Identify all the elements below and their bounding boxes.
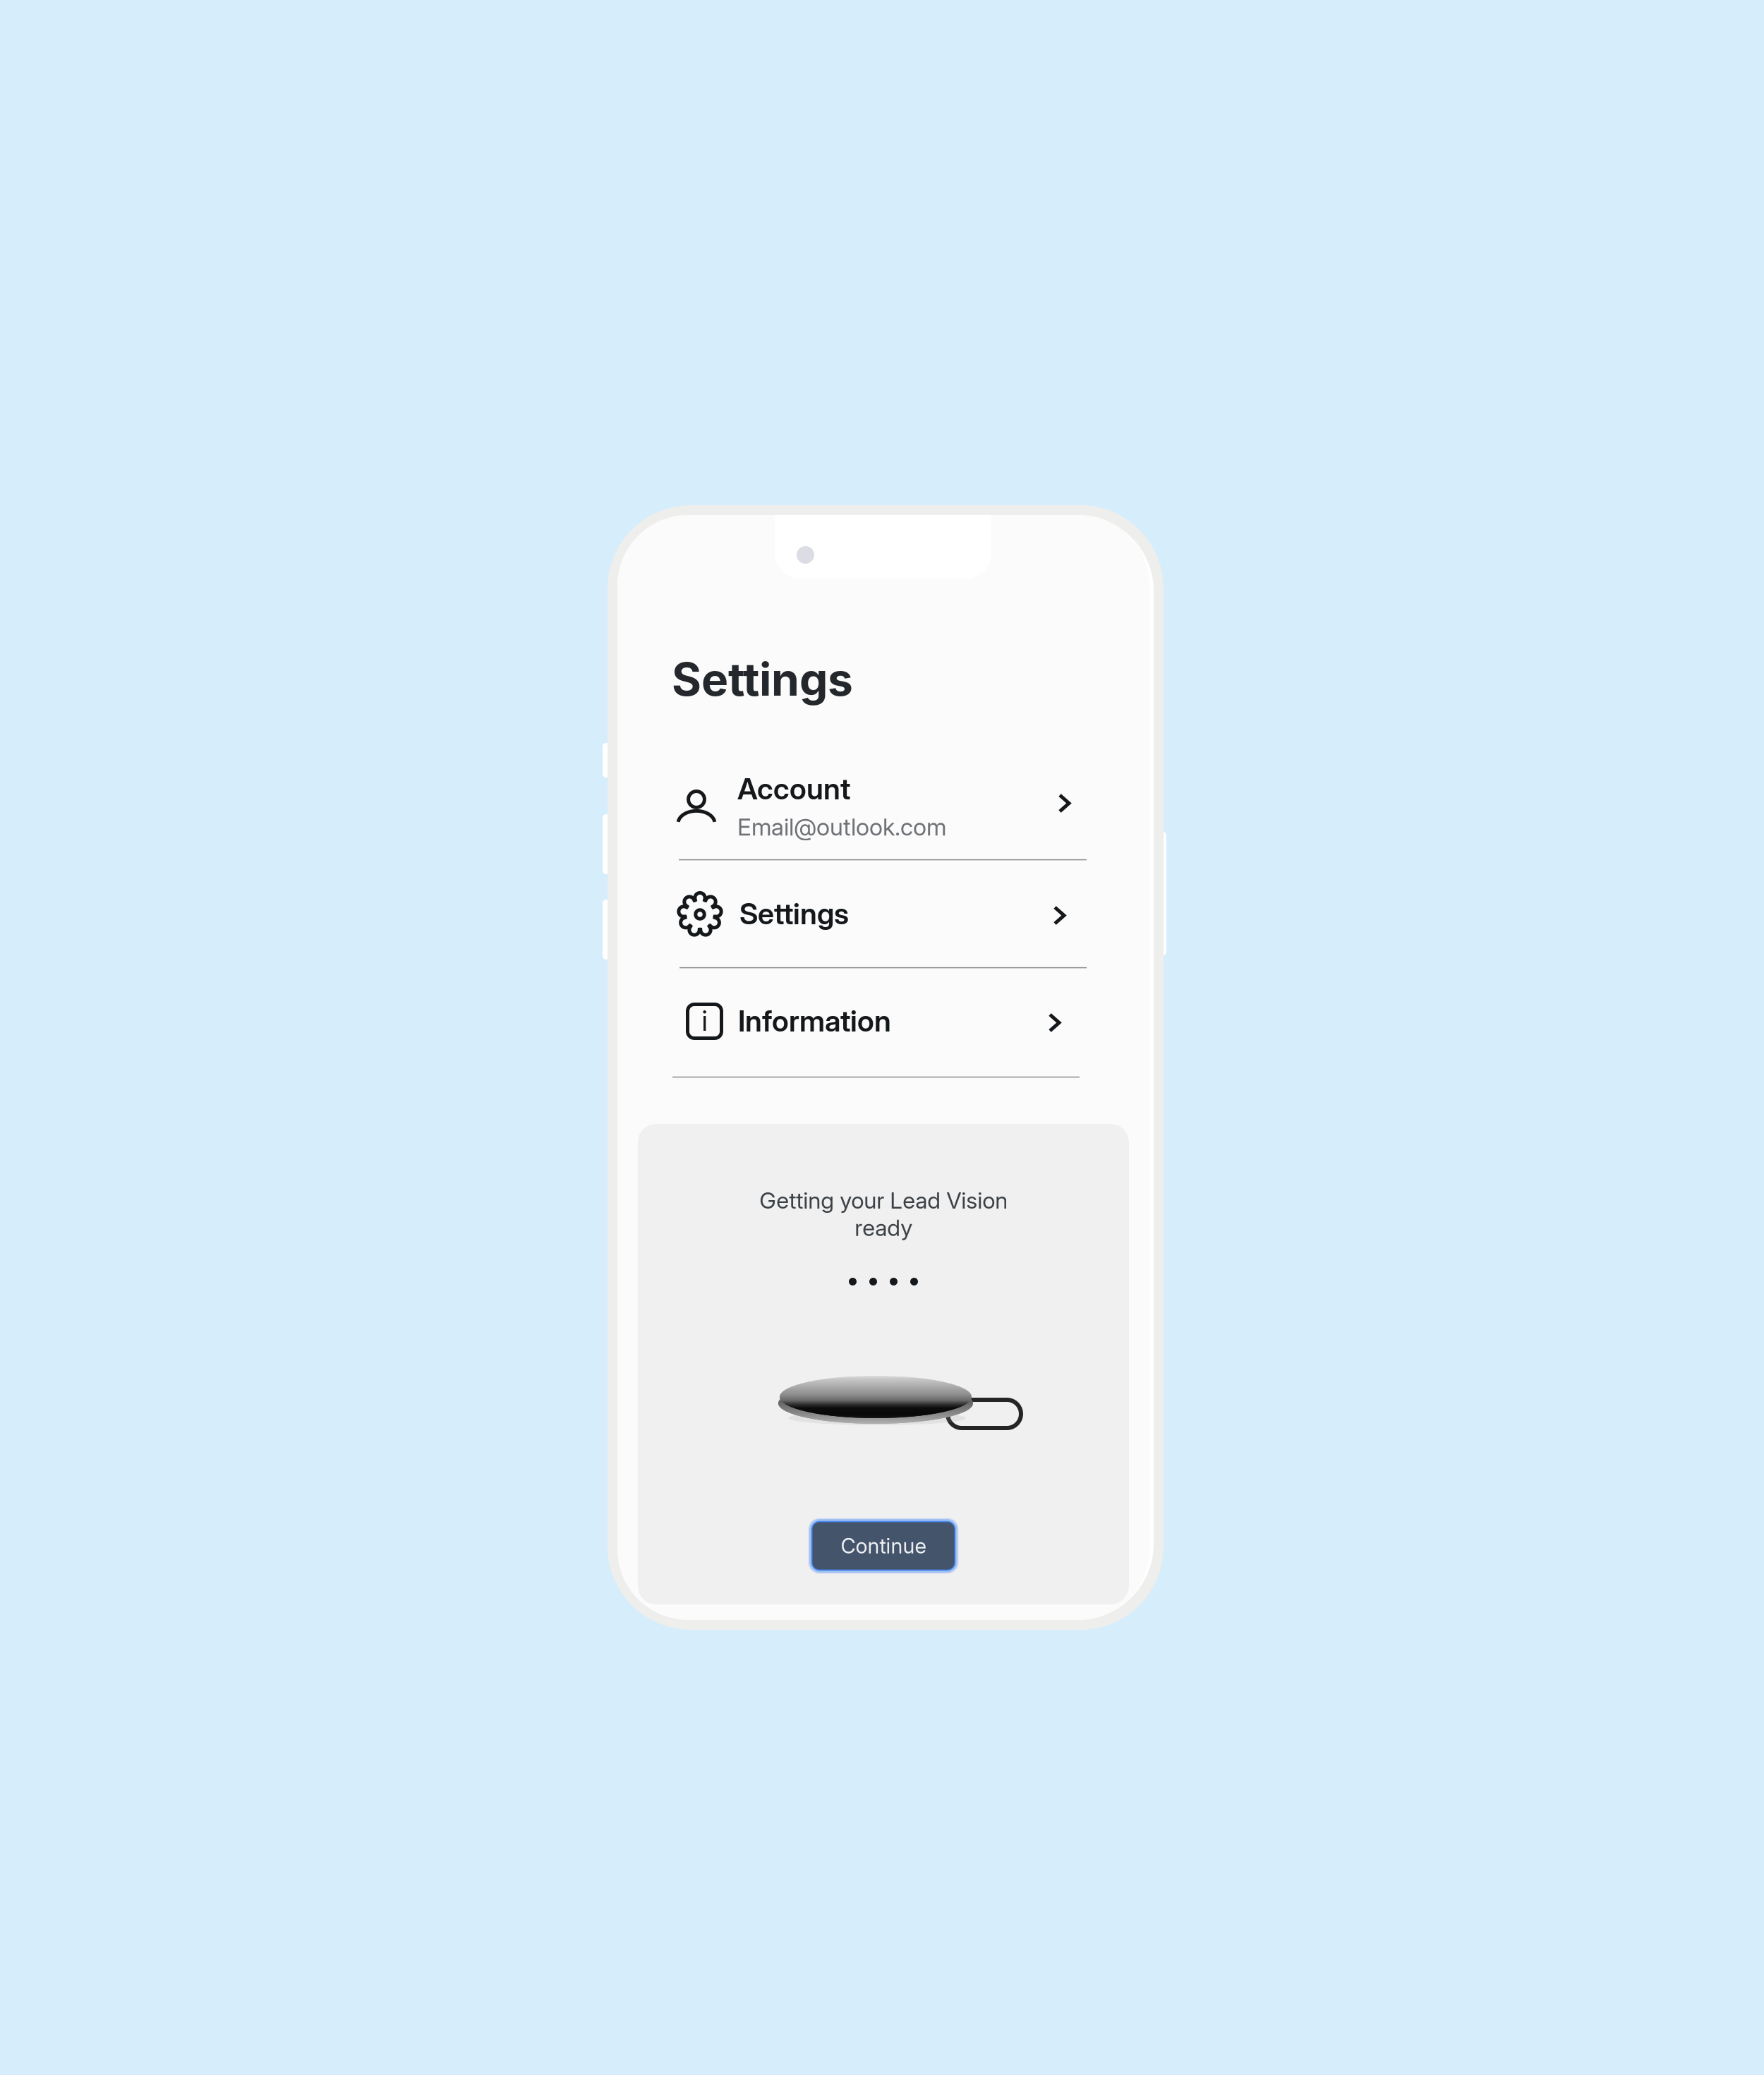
button[interactable]: Account, Email@outlook.com — [677, 775, 1085, 853]
staticText: Continue — [841, 1533, 926, 1558]
button[interactable]: Information — [687, 1003, 1063, 1042]
button[interactable]: Continue — [809, 1518, 958, 1573]
staticText: i — [702, 1004, 707, 1037]
button[interactable]: Settings — [676, 890, 1065, 939]
staticText: Settings — [739, 896, 849, 931]
staticText: Settings — [672, 652, 853, 707]
staticText: Account — [737, 771, 850, 806]
staticText: Getting your Lead Vision ready — [759, 1187, 1008, 1241]
staticText: Email@outlook.com — [737, 813, 946, 841]
staticText: Information — [738, 1003, 891, 1039]
